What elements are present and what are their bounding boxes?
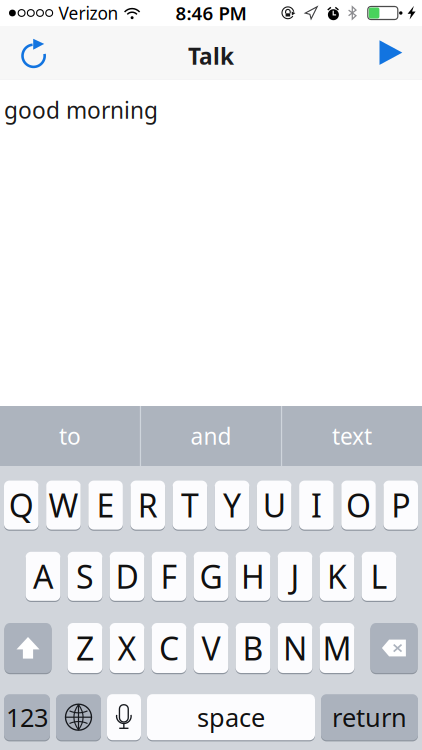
button[interactable]: Delete	[370, 622, 417, 674]
button[interactable]: text	[282, 406, 422, 466]
button[interactable]: 123	[4, 694, 50, 741]
button[interactable]: X	[110, 622, 144, 674]
staticText: good morning	[4, 95, 158, 125]
staticText: D	[115, 555, 138, 598]
button[interactable]: W	[46, 480, 81, 530]
staticText: Y	[223, 484, 241, 526]
button[interactable]: Redo	[10, 30, 56, 76]
button[interactable]: C	[152, 622, 186, 674]
staticText: Talk	[188, 41, 234, 71]
button[interactable]: and	[141, 406, 281, 466]
button[interactable]: J	[278, 551, 312, 601]
button[interactable]: Speak	[368, 30, 414, 76]
button[interactable]: I	[299, 480, 334, 530]
button[interactable]: Next keyboard	[56, 694, 101, 741]
button[interactable]: D	[110, 551, 144, 601]
staticText: F	[160, 555, 177, 598]
button[interactable]: E	[88, 480, 123, 530]
staticText: T	[181, 484, 199, 526]
button[interactable]: M	[320, 622, 354, 674]
staticText: and	[190, 421, 231, 451]
button[interactable]: S	[68, 551, 102, 601]
staticText: U	[263, 484, 286, 526]
button[interactable]: Z	[68, 622, 102, 674]
button[interactable]: H	[236, 551, 270, 601]
staticText: X	[117, 627, 136, 669]
staticText: H	[241, 555, 265, 598]
staticText: W	[48, 484, 78, 526]
button[interactable]: A	[26, 551, 60, 601]
staticText: Z	[76, 627, 94, 669]
staticText: N	[283, 627, 307, 669]
staticText: O	[346, 484, 371, 526]
staticText: I	[311, 484, 322, 526]
staticText: 123	[6, 700, 48, 734]
staticText: V	[201, 627, 220, 669]
button[interactable]: V	[194, 622, 228, 674]
staticText: S	[76, 555, 94, 598]
staticText: B	[242, 627, 263, 669]
button[interactable]: Q	[4, 480, 39, 530]
button[interactable]: to	[0, 406, 140, 466]
button[interactable]: space	[147, 694, 315, 741]
button[interactable]: Y	[215, 480, 249, 530]
staticText: G	[199, 555, 222, 598]
staticText: text	[332, 421, 372, 451]
button[interactable]: R	[130, 480, 165, 530]
staticText: Verizon	[59, 1, 119, 24]
button[interactable]: P	[383, 480, 418, 530]
staticText: E	[97, 484, 115, 526]
button[interactable]: O	[341, 480, 376, 530]
staticText: L	[370, 555, 387, 598]
button[interactable]: Dictate	[107, 694, 141, 741]
staticText: to	[59, 421, 81, 451]
staticText: 8:46 PM	[175, 1, 246, 25]
staticText: M	[322, 627, 351, 669]
button[interactable]: B	[236, 622, 270, 674]
button[interactable]: G	[194, 551, 228, 601]
button[interactable]: U	[257, 480, 291, 530]
staticText: K	[327, 555, 347, 598]
staticText: Q	[9, 484, 34, 526]
button[interactable]: Shift	[4, 622, 51, 674]
button[interactable]: return	[321, 694, 418, 741]
button[interactable]: F	[152, 551, 186, 601]
button[interactable]: L	[362, 551, 396, 601]
staticText: C	[159, 627, 179, 669]
staticText: A	[33, 555, 53, 598]
staticText: J	[290, 555, 299, 598]
staticText: space	[197, 700, 265, 734]
staticText: R	[138, 484, 158, 526]
staticText: P	[391, 484, 410, 526]
button[interactable]: K	[320, 551, 354, 601]
staticText: return	[332, 700, 407, 734]
button[interactable]: N	[278, 622, 312, 674]
button[interactable]: T	[173, 480, 207, 530]
